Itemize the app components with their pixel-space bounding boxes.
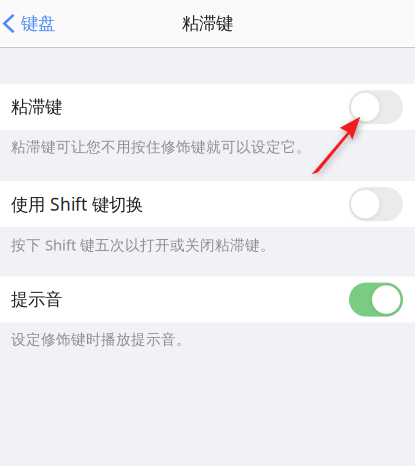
staticText: 粘滞键: [182, 13, 233, 34]
staticText: 设定修饰键时播放提示音。: [11, 331, 191, 349]
staticText: 提示音: [11, 289, 62, 310]
button[interactable]: 使用 Shift 键切换, 关闭: [349, 187, 403, 221]
button[interactable]: 使用 Shift 键切换: [0, 181, 415, 227]
button[interactable]: 粘滞键: [0, 84, 415, 130]
staticText: 键盘: [21, 13, 55, 34]
staticText: 粘滞键可让您不用按住修饰键就可以设定它。: [11, 138, 311, 156]
button[interactable]: 提示音, 打开: [349, 283, 403, 317]
button[interactable]: 提示音: [0, 277, 415, 323]
staticText: 使用 Shift 键切换: [11, 193, 143, 216]
button[interactable]: 粘滞键, 关闭: [349, 90, 403, 124]
button[interactable]: 键盘: [0, 1, 61, 45]
staticText: 按下 Shift 键五次以打开或关闭粘滞键。: [11, 235, 275, 255]
staticText: 粘滞键: [11, 96, 62, 118]
